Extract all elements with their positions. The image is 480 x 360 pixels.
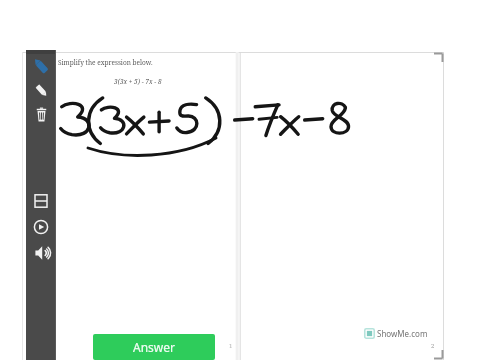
- button[interactable]: Pencil: [26, 78, 56, 102]
- button[interactable]: Marker: [26, 54, 56, 78]
- button[interactable]: Play: [26, 214, 56, 240]
- staticText: 2: [431, 342, 435, 350]
- staticText: 3(3x + 5) − 7x − 8: [114, 77, 162, 86]
- staticText: 1: [229, 342, 233, 350]
- button[interactable]: Answer: [93, 334, 215, 360]
- button[interactable]: Sound: [26, 240, 56, 266]
- button[interactable]: Delete: [26, 102, 56, 126]
- staticText: ShowMe.com: [377, 328, 428, 339]
- staticText: Answer: [133, 339, 175, 355]
- button[interactable]: Pages: [26, 188, 56, 214]
- staticText: Simplify the expression below.: [58, 58, 153, 67]
